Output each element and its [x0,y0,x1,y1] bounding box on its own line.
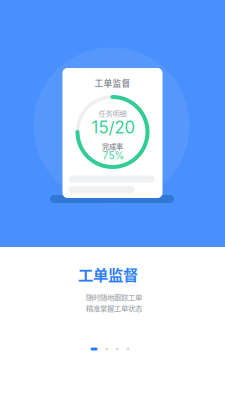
staticText: 完成率 [102,141,123,151]
staticText: 工单监督 [78,263,138,285]
button[interactable]: Page 2 [105,347,108,350]
staticText: 任务明细 [98,108,126,118]
button[interactable]: Page 1, current page [91,347,98,350]
button[interactable]: Page 3 [116,347,119,350]
staticText: 随时随地跟踪工单 [86,292,142,302]
staticText: 精准掌握工单状态 [86,303,142,313]
button[interactable]: Page 4 [126,347,129,350]
staticText: 工单监督 [94,77,130,89]
staticText: 15/20 [91,117,135,138]
staticText: 75% [102,149,124,162]
